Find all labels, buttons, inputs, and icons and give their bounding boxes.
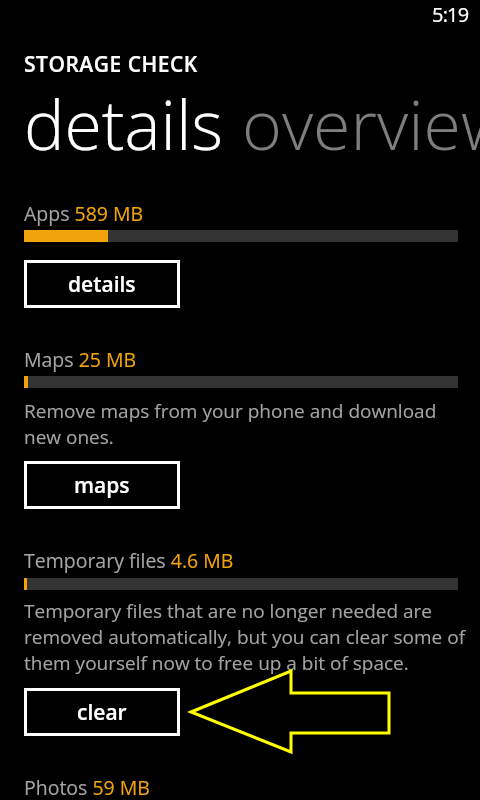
staticText: details [24, 77, 444, 159]
staticText: Temporary files that are no longer neede… [24, 598, 478, 676]
other: Arrow pointing to the clear button [0, 0, 480, 800]
staticText: Temporary files 4.6 MB [24, 547, 234, 574]
staticText: STORAGE CHECK [24, 50, 198, 79]
button[interactable]: details [24, 260, 180, 308]
button[interactable]: maps [24, 461, 180, 509]
button[interactable]: overview [242, 77, 480, 159]
staticText: details [68, 270, 136, 299]
staticText: clear [77, 698, 127, 727]
staticText: Apps 589 MB [24, 200, 144, 227]
staticText: maps [74, 471, 130, 500]
staticText: overview [242, 77, 480, 159]
button[interactable]: clear [24, 688, 180, 736]
staticText: Photos 59 MB [24, 774, 150, 800]
staticText: 5:19 [432, 1, 469, 28]
staticText: Remove maps from your phone and download… [24, 398, 478, 450]
staticText: Maps 25 MB [24, 346, 137, 373]
button[interactable]: details [24, 77, 444, 159]
